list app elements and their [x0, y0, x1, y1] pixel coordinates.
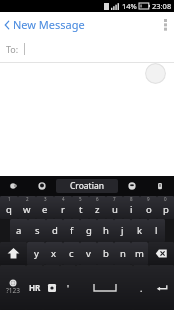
- staticText: e: [42, 203, 48, 216]
- staticText: c: [69, 247, 74, 260]
- staticText: n: [120, 247, 126, 260]
- staticText: l: [155, 224, 158, 237]
- staticText: 4: [62, 196, 65, 202]
- staticText: b: [103, 247, 109, 260]
- button[interactable]: 7: [106, 196, 123, 219]
- staticText: s: [35, 224, 40, 237]
- staticText: 8: [130, 196, 133, 202]
- button[interactable]: Backspace: [148, 242, 174, 265]
- button[interactable]: b: [97, 242, 114, 265]
- button[interactable]: 5: [72, 196, 89, 219]
- button[interactable]: f: [63, 219, 80, 242]
- staticText: To:: [6, 43, 19, 55]
- button[interactable]: Add recipient: [145, 63, 166, 84]
- button[interactable]: 3: [36, 196, 54, 219]
- staticText: ': [67, 282, 70, 294]
- staticText: 23:08: [152, 1, 172, 11]
- staticText: q: [6, 203, 12, 216]
- staticText: z: [95, 203, 100, 216]
- staticText: 0: [164, 196, 167, 202]
- staticText: a: [16, 224, 22, 237]
- button[interactable]: .: [133, 265, 149, 310]
- staticText: v: [86, 247, 91, 260]
- button[interactable]: Emoji: [43, 265, 60, 310]
- staticText: p: [163, 203, 169, 216]
- button[interactable]: 8: [123, 196, 140, 219]
- button[interactable]: 2: [18, 196, 36, 219]
- staticText: t: [79, 203, 83, 216]
- button[interactable]: j: [114, 219, 131, 242]
- button[interactable]: Emoticons: [118, 176, 146, 196]
- staticText: o: [146, 203, 152, 216]
- button[interactable]: y: [27, 242, 45, 265]
- button[interactable]: h: [97, 219, 114, 242]
- staticText: x: [51, 247, 57, 260]
- staticText: i: [130, 203, 133, 216]
- button[interactable]: Shift: [0, 242, 27, 265]
- staticText: k: [137, 224, 143, 237]
- button[interactable]: x: [45, 242, 63, 265]
- button[interactable]: c: [63, 242, 80, 265]
- staticText: y: [34, 247, 39, 260]
- staticText: HR: [29, 282, 41, 293]
- button[interactable]: Voice input: [0, 176, 28, 196]
- staticText: .: [140, 282, 143, 294]
- button[interactable]: 6: [89, 196, 106, 219]
- button[interactable]: g: [80, 219, 97, 242]
- staticText: New Message: [13, 17, 85, 32]
- button[interactable]: k: [131, 219, 148, 242]
- button[interactable]: d: [46, 219, 63, 242]
- button[interactable]: m: [131, 242, 148, 265]
- staticText: f: [70, 224, 74, 237]
- staticText: 7: [113, 196, 116, 202]
- button[interactable]: Theme: [28, 176, 56, 196]
- button[interactable]: Enter: [149, 265, 174, 310]
- button[interactable]: a: [10, 219, 28, 242]
- button[interactable]: ': [60, 265, 76, 310]
- staticText: d: [52, 224, 58, 237]
- staticText: 9: [147, 196, 150, 202]
- staticText: m: [135, 247, 144, 260]
- button[interactable]: n: [114, 242, 131, 265]
- staticText: 5: [79, 196, 82, 202]
- button[interactable]: l: [148, 219, 165, 242]
- staticText: g: [86, 224, 92, 237]
- staticText: 1: [8, 196, 11, 202]
- staticText: w: [23, 203, 31, 216]
- button[interactable]: Settings: [146, 176, 174, 196]
- button[interactable]: 1: [0, 196, 18, 219]
- button[interactable]: Croatian: [56, 179, 118, 193]
- button[interactable]: HR: [26, 265, 43, 310]
- staticText: h: [103, 224, 109, 237]
- staticText: 6: [96, 196, 99, 202]
- button[interactable]: 0: [157, 196, 174, 219]
- button[interactable]: 4: [54, 196, 72, 219]
- staticText: j: [121, 224, 124, 237]
- button[interactable]: v: [80, 242, 97, 265]
- button[interactable]: More options: [156, 12, 174, 36]
- button[interactable]: Space: [76, 265, 133, 310]
- staticText: 14%: [122, 1, 137, 11]
- button[interactable]: s: [28, 219, 46, 242]
- staticText: 2: [26, 196, 29, 202]
- button[interactable]: Symbols: [0, 265, 26, 310]
- button[interactable]: 9: [140, 196, 157, 219]
- staticText: u: [112, 203, 118, 216]
- staticText: Croatian: [70, 180, 104, 192]
- button[interactable]: New Message: [3, 17, 85, 32]
- staticText: 3: [44, 196, 47, 202]
- staticText: r: [61, 203, 65, 216]
- staticText: ?123: [6, 286, 20, 295]
